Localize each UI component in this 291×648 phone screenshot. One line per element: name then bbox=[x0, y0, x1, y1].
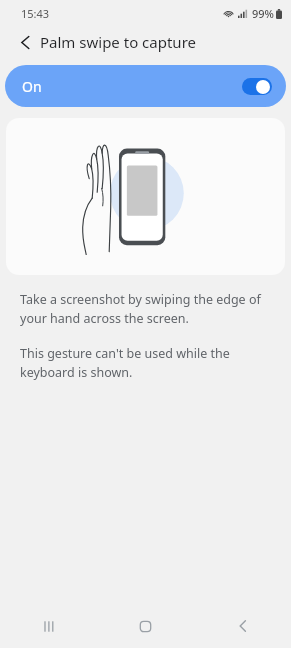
staticText: 15:43 bbox=[21, 6, 50, 21]
staticText: 99% bbox=[252, 6, 274, 21]
button[interactable]: Recents bbox=[0, 604, 97, 648]
staticText: Take a screenshot by swiping the edge of… bbox=[20, 291, 271, 327]
button[interactable]: On bbox=[5, 65, 286, 107]
button[interactable]: Back bbox=[12, 29, 38, 55]
staticText: Palm swipe to capture bbox=[40, 32, 196, 52]
button[interactable]: Home bbox=[97, 604, 194, 648]
staticText: On bbox=[22, 77, 42, 96]
staticText: This gesture can't be used while the key… bbox=[20, 345, 271, 381]
button[interactable]: Back bbox=[194, 604, 291, 648]
